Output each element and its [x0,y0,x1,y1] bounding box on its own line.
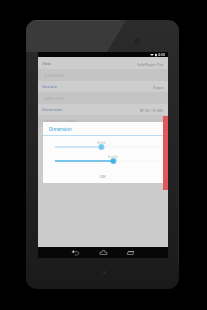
button[interactable]: OK [43,170,163,183]
staticText: Swipe [153,85,164,90]
staticText: Width [97,141,106,145]
staticText: Height [108,155,118,159]
staticText: 4:50 [158,52,166,57]
staticText: SWIPE AREA [44,96,64,101]
button[interactable]: Home [97,247,110,258]
staticText: SolePlayer Pro [137,62,164,67]
button[interactable]: iTask [38,58,168,70]
staticText: Gesture [42,84,58,90]
button[interactable]: Gesture [38,81,168,93]
staticText: Dimension [42,107,63,113]
staticText: W 35 / H 685 [140,108,164,113]
button[interactable]: UI AND PLACEMENT [38,115,168,127]
button[interactable]: Back [69,247,82,258]
staticText: iTask [42,61,52,67]
staticText: ACTIVATION [44,73,64,78]
staticText: UI AND PLACEMENT [44,119,78,124]
button[interactable]: Recent apps [124,247,137,258]
staticText: Dimension [49,126,72,132]
button[interactable]: Dimension [38,104,168,116]
staticText: OK [100,174,106,180]
